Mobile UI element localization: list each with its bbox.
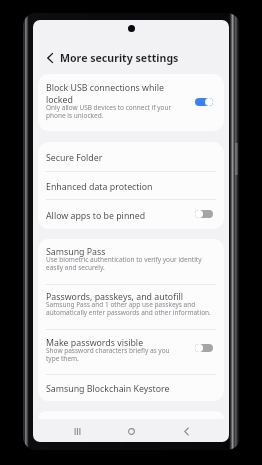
button[interactable]: Block USB connections while locked bbox=[195, 98, 213, 106]
staticText: Samsung Pass and 1 other app use passkey… bbox=[46, 301, 211, 317]
button[interactable]: Samsung Blockchain Keystore bbox=[38, 375, 224, 401]
staticText: Make passwords visible bbox=[46, 336, 144, 348]
staticText: Use biometric authentication to verify y… bbox=[46, 256, 202, 272]
button[interactable]: Recent apps bbox=[66, 420, 88, 442]
button[interactable]: Back bbox=[175, 420, 197, 442]
staticText: Show password characters briefly as you … bbox=[46, 347, 170, 363]
staticText: Only allow USB devices to connect if you… bbox=[46, 104, 172, 120]
button[interactable]: Make passwords visible bbox=[195, 344, 213, 352]
staticText: Passwords, passkeys, and autofill bbox=[46, 290, 184, 302]
staticText: Samsung Blockchain Keystore bbox=[46, 382, 170, 394]
staticText: Block USB connections while locked bbox=[46, 81, 164, 105]
staticText: Allow apps to be pinned bbox=[46, 209, 195, 221]
button[interactable]: Secure Folder bbox=[38, 142, 224, 171]
staticText: Secure Folder bbox=[46, 151, 103, 163]
button[interactable]: Allow apps to be pinned bbox=[38, 200, 224, 229]
staticText: More security settings bbox=[60, 51, 179, 65]
button[interactable]: Enhanced data protection bbox=[38, 172, 224, 199]
staticText: Samsung Pass bbox=[46, 245, 106, 257]
button[interactable]: Home bbox=[120, 420, 142, 442]
button[interactable]: Samsung Pass bbox=[38, 239, 224, 284]
button[interactable]: Block USB connections while locked bbox=[38, 74, 224, 131]
staticText: Enhanced data protection bbox=[46, 180, 153, 192]
button[interactable]: Passwords, passkeys, and autofill bbox=[38, 285, 224, 329]
button[interactable]: Allow apps to be pinned bbox=[195, 210, 213, 218]
button[interactable]: Make passwords visible bbox=[38, 330, 224, 374]
button[interactable]: Navigate up bbox=[43, 51, 57, 65]
